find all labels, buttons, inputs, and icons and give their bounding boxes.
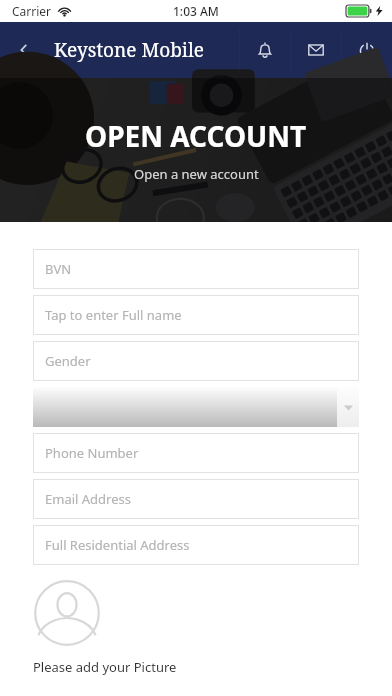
button[interactable]: Add your picture — [33, 579, 101, 647]
button[interactable]: Log out — [342, 22, 392, 78]
button[interactable]: Full Residential Address — [33, 525, 359, 565]
staticText: Tap to enter Full name — [45, 306, 182, 324]
button[interactable]: Back — [0, 22, 48, 78]
button[interactable]: Phone Number — [33, 433, 359, 473]
staticText: 1:03 AM — [173, 3, 219, 19]
staticText: Keystone Mobile — [54, 37, 204, 63]
staticText: Open a new account — [134, 165, 259, 183]
staticText: Full Residential Address — [45, 536, 190, 554]
staticText: Please add your Picture — [33, 658, 177, 676]
staticText: BVN — [45, 260, 72, 278]
button[interactable]: Notifications — [240, 22, 290, 78]
staticText: OPEN ACCOUNT — [85, 117, 307, 155]
staticText: Phone Number — [45, 444, 139, 462]
button[interactable]: Tap to enter Full name — [33, 295, 359, 335]
button[interactable]: Email Address — [33, 479, 359, 519]
staticText: Carrier — [12, 3, 52, 19]
button[interactable]: Messages — [291, 22, 341, 78]
button[interactable]: Gender — [33, 341, 359, 381]
staticText: Email Address — [45, 490, 131, 508]
button[interactable]: BVN — [33, 249, 359, 289]
staticText: Gender — [45, 352, 91, 370]
button[interactable]: Select option — [33, 387, 359, 427]
